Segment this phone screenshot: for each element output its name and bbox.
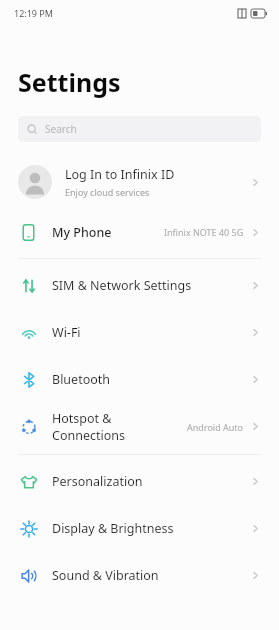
staticText: Display & Brightness: [52, 520, 250, 537]
button[interactable]: Bluetooth: [0, 356, 279, 403]
staticText: Search: [45, 122, 77, 136]
staticText: Sound & Vibration: [52, 567, 250, 584]
staticText: SIM & Network Settings: [52, 277, 250, 294]
button[interactable]: Sound & Vibration: [0, 552, 279, 599]
button[interactable]: Wi-Fi: [0, 309, 279, 356]
button[interactable]: Display & Brightness: [0, 505, 279, 552]
staticText: Hotspot & Connections: [52, 410, 187, 444]
staticText: Android Auto: [187, 421, 244, 433]
button[interactable]: My Phone: [0, 210, 279, 254]
button[interactable]: Hotspot & Connections: [0, 403, 279, 450]
staticText: Infinix NOTE 40 5G: [164, 226, 244, 238]
staticText: Wi-Fi: [52, 324, 250, 341]
button[interactable]: SIM & Network Settings: [0, 262, 279, 309]
staticText: Log In to Infinix ID: [65, 166, 175, 183]
button[interactable]: Log In to Infinix ID: [0, 154, 279, 210]
button[interactable]: Personalization: [0, 458, 279, 505]
staticText: Bluetooth: [52, 371, 250, 388]
staticText: Enjoy cloud services: [65, 186, 150, 198]
staticText: Personalization: [52, 473, 250, 490]
staticText: My Phone: [52, 224, 164, 241]
button[interactable]: Search: [18, 116, 261, 142]
staticText: Settings: [18, 65, 121, 99]
staticText: 12:19 PM: [14, 7, 53, 19]
